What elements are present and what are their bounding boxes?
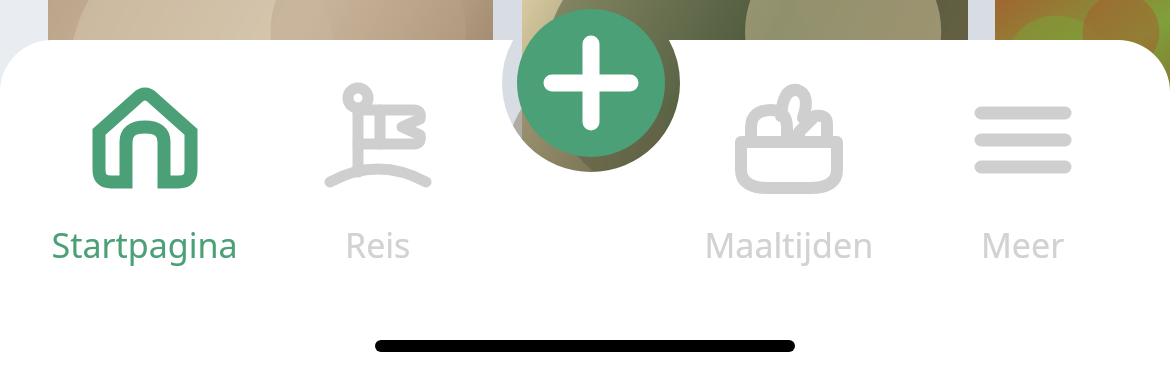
button[interactable]: Add: [517, 9, 664, 157]
button[interactable]: Startpagina: [0, 41, 239, 293]
button[interactable]: Reis: [286, 41, 473, 293]
button[interactable]: Meer: [953, 41, 1169, 293]
button[interactable]: Maaltijden: [707, 41, 894, 293]
